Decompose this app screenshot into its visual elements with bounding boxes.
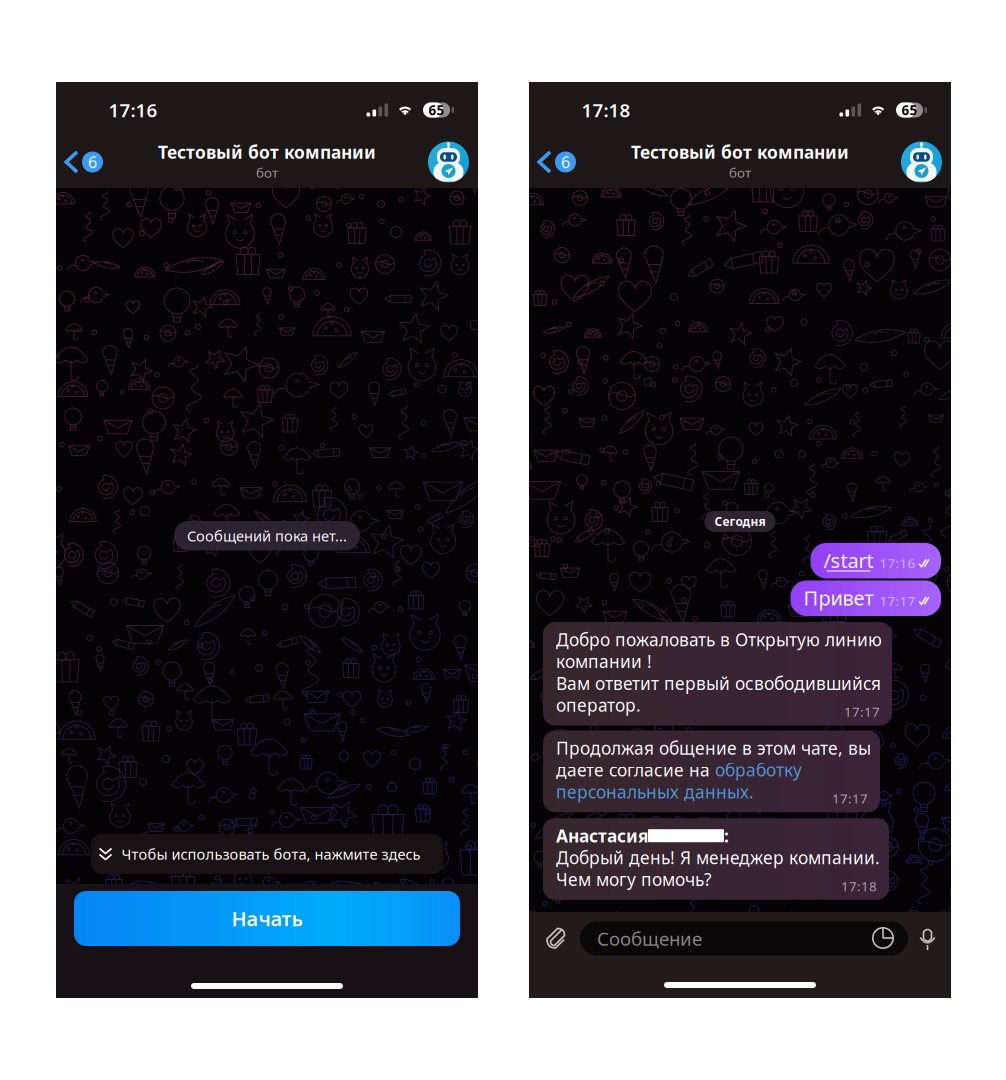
button[interactable]: Bot profile [901,141,951,182]
staticText: Вам ответит первый освободившийся [556,672,881,695]
staticText: Чтобы использовать бота, нажмите здесь [121,844,420,864]
staticText: 17:17 [844,703,880,720]
staticText: бот [256,164,278,181]
button[interactable]: Чтобы использовать бота, нажмите здесь [91,834,443,874]
staticText: 65 [429,101,445,119]
staticText: персональных данных. [556,780,754,803]
staticText: 17:16 [108,98,157,122]
staticText: Привет [803,584,873,611]
staticText: 6 [561,151,570,173]
staticText: 6 [88,151,97,173]
staticText: обработку [715,758,802,781]
staticText: Добрый день! Я менеджер компании. [556,846,880,869]
staticText: 17:18 [581,98,630,122]
staticText: Добро пожаловать в Открытую линию [556,628,882,651]
staticText: даете согласие на [556,758,715,781]
staticText: Сообщение [597,926,702,951]
staticText: бот [729,164,751,181]
button[interactable]: Сообщение [580,921,908,955]
staticText: оператор. [556,693,641,716]
staticText: Тестовый бот компании [158,141,376,164]
button[interactable]: Back [529,139,576,185]
staticText: Чем могу помочь? [556,868,712,891]
staticText: 17:17 [879,592,915,609]
button[interactable]: Bot profile [428,141,478,182]
staticText: компании ! [556,650,652,673]
staticText: Сегодня [714,513,765,529]
button[interactable]: Voice message [919,926,936,951]
staticText: 17:17 [832,789,868,807]
staticText: Анастасия [556,824,648,847]
staticText: Продолжая общение в этом чате, вы [556,736,871,759]
staticText: /start [823,547,873,573]
staticText: 17:16 [879,554,915,572]
staticText: 17:18 [841,877,877,895]
staticText: : [724,824,729,847]
staticText: Начать [231,905,302,932]
button[interactable]: Начать [74,891,460,946]
staticText: 65 [902,101,918,119]
button[interactable]: Back [56,139,103,185]
staticText: Сообщений пока нет... [187,526,347,545]
staticText: Тестовый бот компании [631,141,849,164]
button[interactable]: Attach [544,925,569,951]
